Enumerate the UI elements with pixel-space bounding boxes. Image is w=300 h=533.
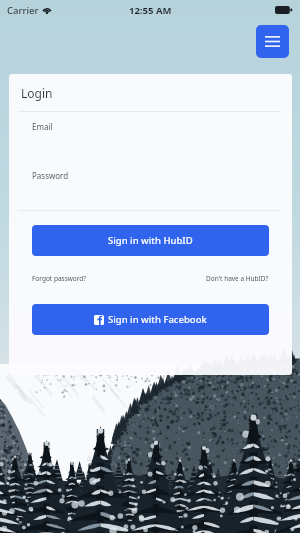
staticText: 12:55 AM [129, 4, 172, 17]
button[interactable]: Sign in with Facebook [32, 304, 269, 335]
button[interactable]: Menu [256, 25, 289, 58]
staticText: Login [21, 85, 53, 101]
button[interactable]: Forgot password? [32, 274, 87, 283]
staticText: Email [32, 121, 53, 132]
staticText: Carrier [7, 4, 39, 17]
staticText: Forgot password? [32, 274, 87, 283]
button[interactable]: Sign in with HubID [32, 225, 269, 256]
button[interactable]: Password [9, 161, 292, 210]
staticText: Sign in with HubID [108, 234, 193, 247]
button[interactable]: Email [9, 112, 292, 161]
staticText: Sign in with Facebook [108, 313, 207, 326]
button[interactable]: Don't have a HubID? [206, 274, 269, 283]
staticText: Don't have a HubID? [206, 274, 269, 283]
staticText: Password [32, 170, 69, 181]
